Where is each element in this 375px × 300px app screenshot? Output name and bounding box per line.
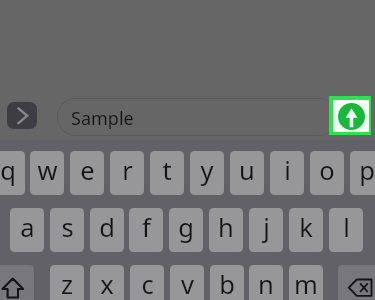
- staticText: n: [258, 267, 274, 300]
- button[interactable]: o: [310, 151, 344, 195]
- button[interactable]: u: [230, 151, 264, 195]
- button[interactable]: g: [169, 208, 203, 252]
- button[interactable]: a: [10, 208, 44, 252]
- button[interactable]: v: [170, 265, 204, 300]
- button[interactable]: f: [129, 208, 163, 252]
- staticText: x: [100, 267, 114, 300]
- staticText: w: [37, 153, 58, 188]
- staticText: z: [61, 267, 73, 300]
- button[interactable]: s: [50, 208, 84, 252]
- button[interactable]: d: [90, 208, 124, 252]
- staticText: g: [178, 210, 194, 245]
- button[interactable]: w: [30, 151, 64, 195]
- button[interactable]: Backspace: [338, 265, 375, 300]
- button[interactable]: Shift: [0, 265, 34, 300]
- staticText: c: [141, 267, 154, 300]
- staticText: l: [343, 210, 350, 245]
- button[interactable]: q: [0, 151, 25, 195]
- staticText: v: [181, 267, 194, 300]
- staticText: e: [80, 153, 95, 188]
- button[interactable]: l: [329, 208, 363, 252]
- staticText: s: [61, 210, 74, 245]
- staticText: k: [299, 210, 313, 245]
- button[interactable]: j: [249, 208, 283, 252]
- staticText: i: [284, 153, 291, 188]
- button[interactable]: h: [209, 208, 243, 252]
- button[interactable]: y: [190, 151, 224, 195]
- staticText: f: [142, 210, 151, 245]
- button[interactable]: Sample: [57, 98, 337, 136]
- staticText: Sample: [71, 106, 134, 131]
- button[interactable]: m: [289, 265, 323, 300]
- staticText: h: [218, 210, 234, 245]
- button[interactable]: t: [150, 151, 184, 195]
- button[interactable]: k: [289, 208, 323, 252]
- button[interactable]: b: [210, 265, 244, 300]
- staticText: m: [294, 267, 318, 300]
- staticText: r: [122, 153, 133, 188]
- staticText: y: [200, 153, 214, 188]
- button[interactable]: Show apps: [7, 102, 37, 129]
- button[interactable]: p: [350, 151, 375, 195]
- button[interactable]: r: [110, 151, 144, 195]
- button[interactable]: n: [249, 265, 283, 300]
- staticText: b: [219, 267, 235, 300]
- staticText: d: [99, 210, 115, 245]
- staticText: u: [239, 153, 255, 188]
- button[interactable]: e: [70, 151, 104, 195]
- staticText: t: [162, 153, 172, 188]
- staticText: a: [20, 210, 35, 245]
- button[interactable]: Send message: [333, 100, 369, 132]
- button[interactable]: c: [130, 265, 164, 300]
- staticText: o: [319, 153, 335, 188]
- button[interactable]: z: [50, 265, 84, 300]
- staticText: p: [359, 153, 375, 188]
- button[interactable]: x: [90, 265, 124, 300]
- staticText: j: [263, 210, 270, 245]
- button[interactable]: i: [270, 151, 304, 195]
- staticText: q: [0, 153, 16, 188]
